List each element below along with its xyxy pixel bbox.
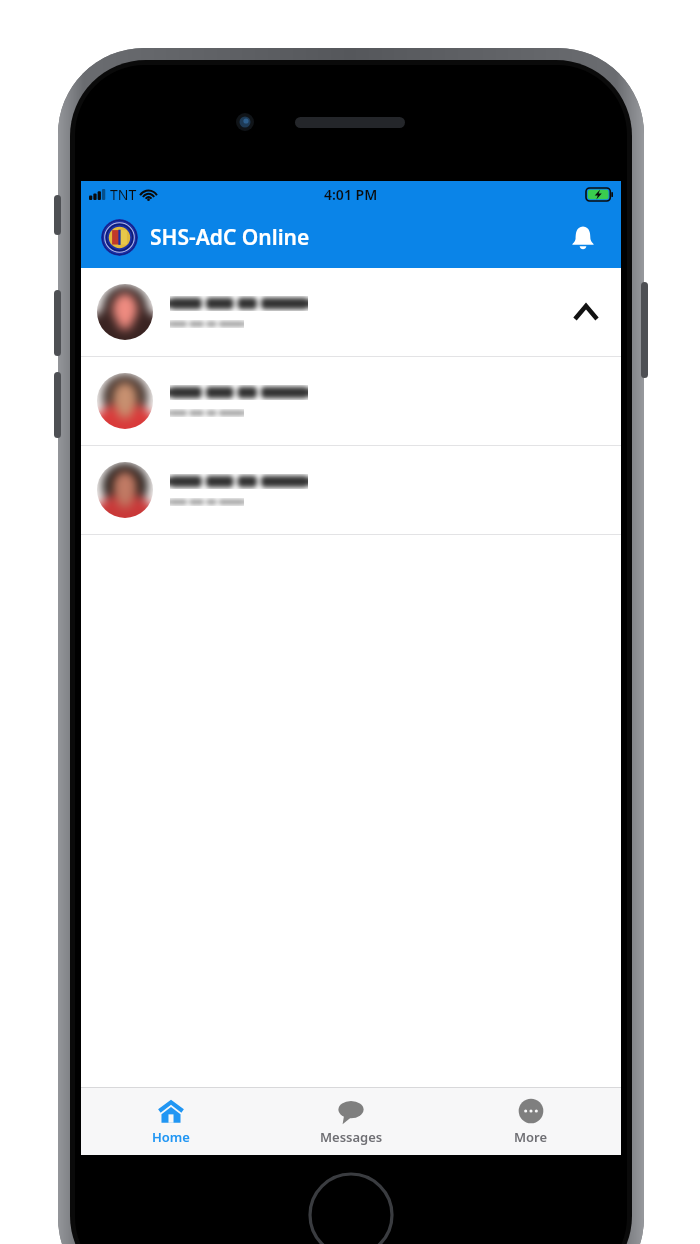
staticText: Messages	[320, 1128, 383, 1146]
button[interactable]: Collapse	[81, 268, 621, 356]
button[interactable]: More	[441, 1088, 621, 1155]
button[interactable]: Collapse	[565, 291, 607, 333]
button[interactable]: Messages	[261, 1088, 441, 1155]
staticText: TNT	[110, 185, 137, 204]
staticText: Home	[152, 1128, 190, 1146]
button[interactable]	[81, 357, 621, 445]
staticText: More	[514, 1128, 548, 1146]
button[interactable]: Home	[81, 1088, 261, 1155]
staticText: SHS-AdC Online	[150, 223, 310, 252]
button[interactable]: School logo	[101, 219, 138, 256]
staticText: 4:01 PM	[324, 185, 378, 204]
button[interactable]	[81, 446, 621, 534]
button[interactable]: Notifications	[563, 218, 603, 258]
